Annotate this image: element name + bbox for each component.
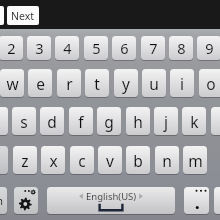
staticText: f: [78, 111, 84, 132]
staticText: a: [0, 111, 1, 132]
button[interactable]: 4: [55, 36, 79, 60]
staticText: w: [6, 73, 19, 94]
button[interactable]: z: [13, 146, 37, 174]
button[interactable]: t: [85, 69, 109, 97]
button[interactable]: 3: [27, 36, 51, 60]
staticText: r: [66, 73, 73, 94]
button[interactable]: w: [0, 69, 24, 97]
staticText: 6: [120, 38, 129, 58]
staticText: Next: [11, 9, 35, 23]
staticText: 5: [92, 38, 101, 58]
staticText: 2: [7, 38, 16, 58]
staticText: y: [122, 73, 130, 94]
staticText: Sym: [0, 193, 3, 208]
button[interactable]: u: [142, 69, 166, 97]
staticText: n: [162, 150, 172, 171]
staticText: k: [190, 111, 199, 132]
button[interactable]: Symbols: [0, 187, 7, 214]
button[interactable]: c: [70, 146, 94, 174]
button[interactable]: a: [0, 107, 8, 135]
button[interactable]: v: [98, 146, 122, 174]
staticText: g: [104, 111, 114, 132]
staticText: v: [106, 150, 114, 171]
button[interactable]: b: [126, 146, 150, 174]
button[interactable]: 6: [112, 36, 136, 60]
button[interactable]: Shift: [0, 146, 8, 174]
staticText: h: [133, 111, 143, 132]
staticText: s: [20, 111, 28, 132]
button[interactable]: j: [154, 107, 178, 135]
button[interactable]: h: [126, 107, 150, 135]
button[interactable]: e: [28, 69, 52, 97]
staticText: x: [49, 150, 58, 171]
staticText: d: [47, 111, 57, 132]
staticText: c: [78, 150, 86, 171]
button[interactable]: 9: [197, 36, 220, 60]
button[interactable]: x: [41, 146, 65, 174]
button[interactable]: r: [57, 69, 81, 97]
button[interactable]: 2: [0, 36, 23, 60]
button[interactable]: s: [12, 107, 36, 135]
button[interactable]: m: [183, 146, 207, 174]
staticText: b: [133, 150, 143, 171]
staticText: z: [21, 150, 29, 171]
staticText: 4: [63, 38, 72, 58]
staticText: m: [188, 150, 203, 171]
button[interactable]: l: [211, 107, 220, 135]
button[interactable]: English(US): [47, 187, 175, 214]
staticText: 7: [149, 38, 158, 58]
staticText: u: [149, 73, 159, 94]
staticText: 8: [177, 38, 186, 58]
staticText: t: [94, 73, 100, 94]
button[interactable]: n: [155, 146, 179, 174]
staticText: 9: [205, 38, 214, 58]
button[interactable]: d: [40, 107, 64, 135]
staticText: 3: [35, 38, 44, 58]
button[interactable]: f: [69, 107, 93, 135]
button[interactable]: 8: [169, 36, 193, 60]
button[interactable]: k: [182, 107, 206, 135]
button[interactable]: Enter: [214, 187, 220, 214]
staticText: o: [206, 73, 216, 94]
button[interactable]: 5: [84, 36, 108, 60]
staticText: i: [180, 73, 184, 94]
button[interactable]: g: [97, 107, 121, 135]
button[interactable]: Settings: [14, 187, 38, 214]
staticText: English(US): [86, 190, 137, 203]
button[interactable]: Period: [184, 187, 209, 214]
button[interactable]: i: [170, 69, 194, 97]
staticText: j: [164, 111, 168, 132]
button[interactable]: Next: [7, 6, 39, 25]
button[interactable]: o: [199, 69, 220, 97]
button[interactable]: 7: [141, 36, 165, 60]
button[interactable]: Previous suggestion: [0, 6, 4, 25]
staticText: e: [36, 73, 45, 94]
button[interactable]: y: [114, 69, 138, 97]
